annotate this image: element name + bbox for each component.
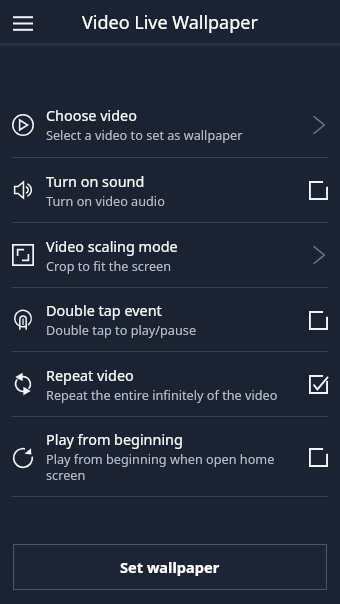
staticText: Double tap to play/pause xyxy=(46,321,197,338)
staticText: Crop to fit the screen xyxy=(46,257,172,274)
staticText: Repeat video xyxy=(46,366,134,386)
staticText: Video Live Wallpaper xyxy=(82,10,258,35)
button[interactable]: Video scaling mode xyxy=(0,223,340,287)
button[interactable]: Unchecked xyxy=(307,446,329,468)
button[interactable]: Open navigation menu xyxy=(5,5,41,41)
staticText: Play from beginning xyxy=(46,430,183,450)
staticText: Choose video xyxy=(46,106,137,126)
button[interactable]: Set wallpaper xyxy=(13,544,327,590)
staticText: Select a video to set as wallpaper xyxy=(46,126,243,143)
button[interactable]: Open xyxy=(307,244,329,266)
button[interactable]: Turn on sound xyxy=(0,158,340,222)
button[interactable]: Unchecked xyxy=(307,309,329,331)
staticText: Turn on video audio xyxy=(46,192,165,209)
button[interactable]: Repeat video xyxy=(0,352,340,416)
button[interactable]: Unchecked xyxy=(307,179,329,201)
staticText: Video scaling mode xyxy=(46,237,178,257)
staticText: Repeat the entire infinitely of the vide… xyxy=(46,386,278,403)
button[interactable]: Double tap event xyxy=(0,288,340,351)
staticText: Play from beginning when open home scree… xyxy=(46,450,299,484)
button[interactable]: Open xyxy=(307,114,329,136)
button[interactable]: Choose video xyxy=(0,92,340,157)
staticText: Turn on sound xyxy=(46,172,145,192)
button[interactable]: Play from beginning xyxy=(0,417,340,496)
staticText: Double tap event xyxy=(46,301,162,321)
button[interactable]: Checked xyxy=(307,373,329,395)
staticText: Set wallpaper xyxy=(120,557,220,577)
